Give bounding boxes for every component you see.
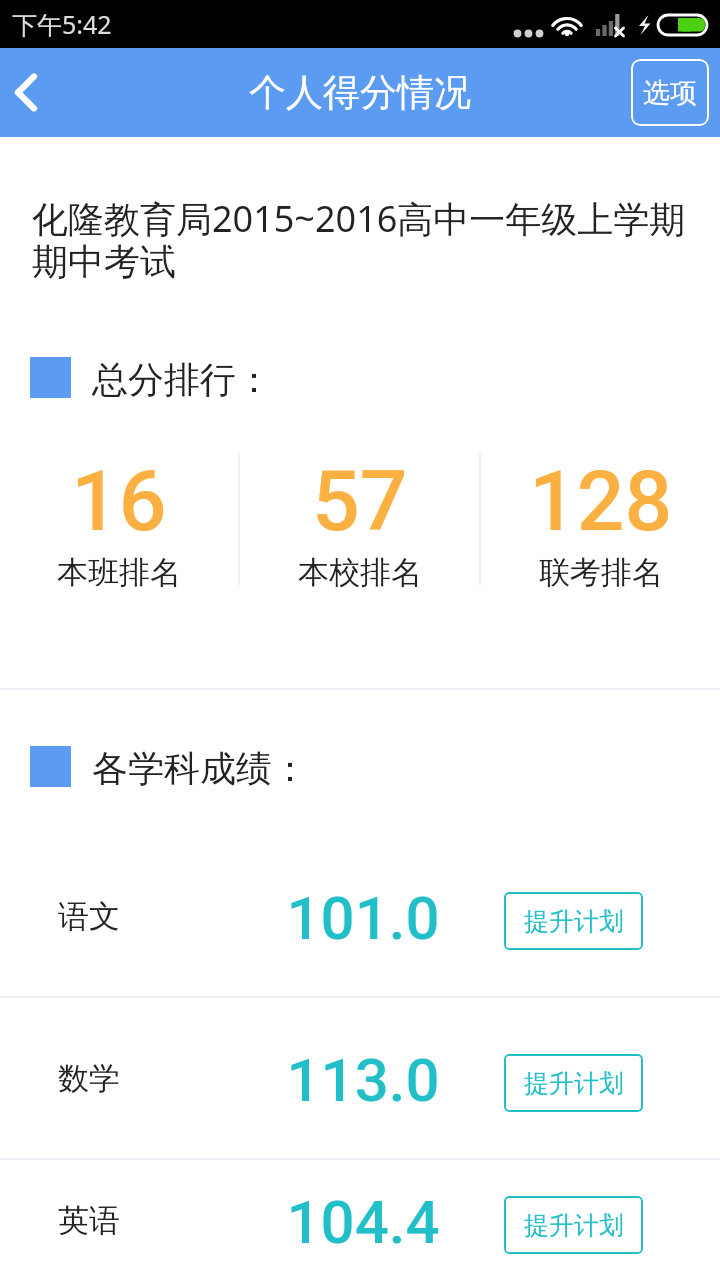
staticText: 语文: [58, 897, 258, 936]
button[interactable]: 提升计划: [504, 892, 643, 950]
button[interactable]: 提升计划: [504, 1054, 643, 1112]
button[interactable]: 128: [481, 452, 720, 612]
staticText: 104.4: [258, 1187, 468, 1257]
staticText: 化隆教育局2015~2016高中一年级上学期期中考试: [32, 194, 692, 285]
button[interactable]: 提升计划: [504, 1196, 643, 1254]
staticText: 英语: [58, 1201, 258, 1240]
staticText: 总分排行：: [92, 357, 272, 398]
staticText: 各学科成绩：: [92, 746, 308, 787]
button[interactable]: 选项: [631, 59, 709, 126]
staticText: 提升计划: [524, 1068, 624, 1099]
staticText: 101.0: [258, 883, 468, 953]
button[interactable]: 57: [240, 452, 479, 612]
staticText: 数学: [58, 1059, 258, 1098]
staticText: 选项: [643, 76, 697, 110]
button[interactable]: 数学: [0, 998, 720, 1158]
staticText: 提升计划: [524, 906, 624, 937]
button[interactable]: 语文: [0, 836, 720, 996]
staticText: 本班排名: [57, 553, 181, 592]
staticText: 个人得分情况: [249, 69, 471, 116]
staticText: 57: [312, 452, 408, 550]
staticText: 16: [71, 452, 167, 550]
button[interactable]: 英语: [0, 1160, 720, 1280]
staticText: 提升计划: [524, 1210, 624, 1241]
button[interactable]: Back: [0, 48, 56, 137]
button[interactable]: 16: [0, 452, 238, 612]
staticText: 128: [529, 452, 673, 550]
staticText: 下午5:42: [12, 7, 112, 41]
staticText: 本校排名: [298, 553, 422, 592]
staticText: 联考排名: [539, 553, 663, 592]
staticText: 113.0: [258, 1045, 468, 1115]
